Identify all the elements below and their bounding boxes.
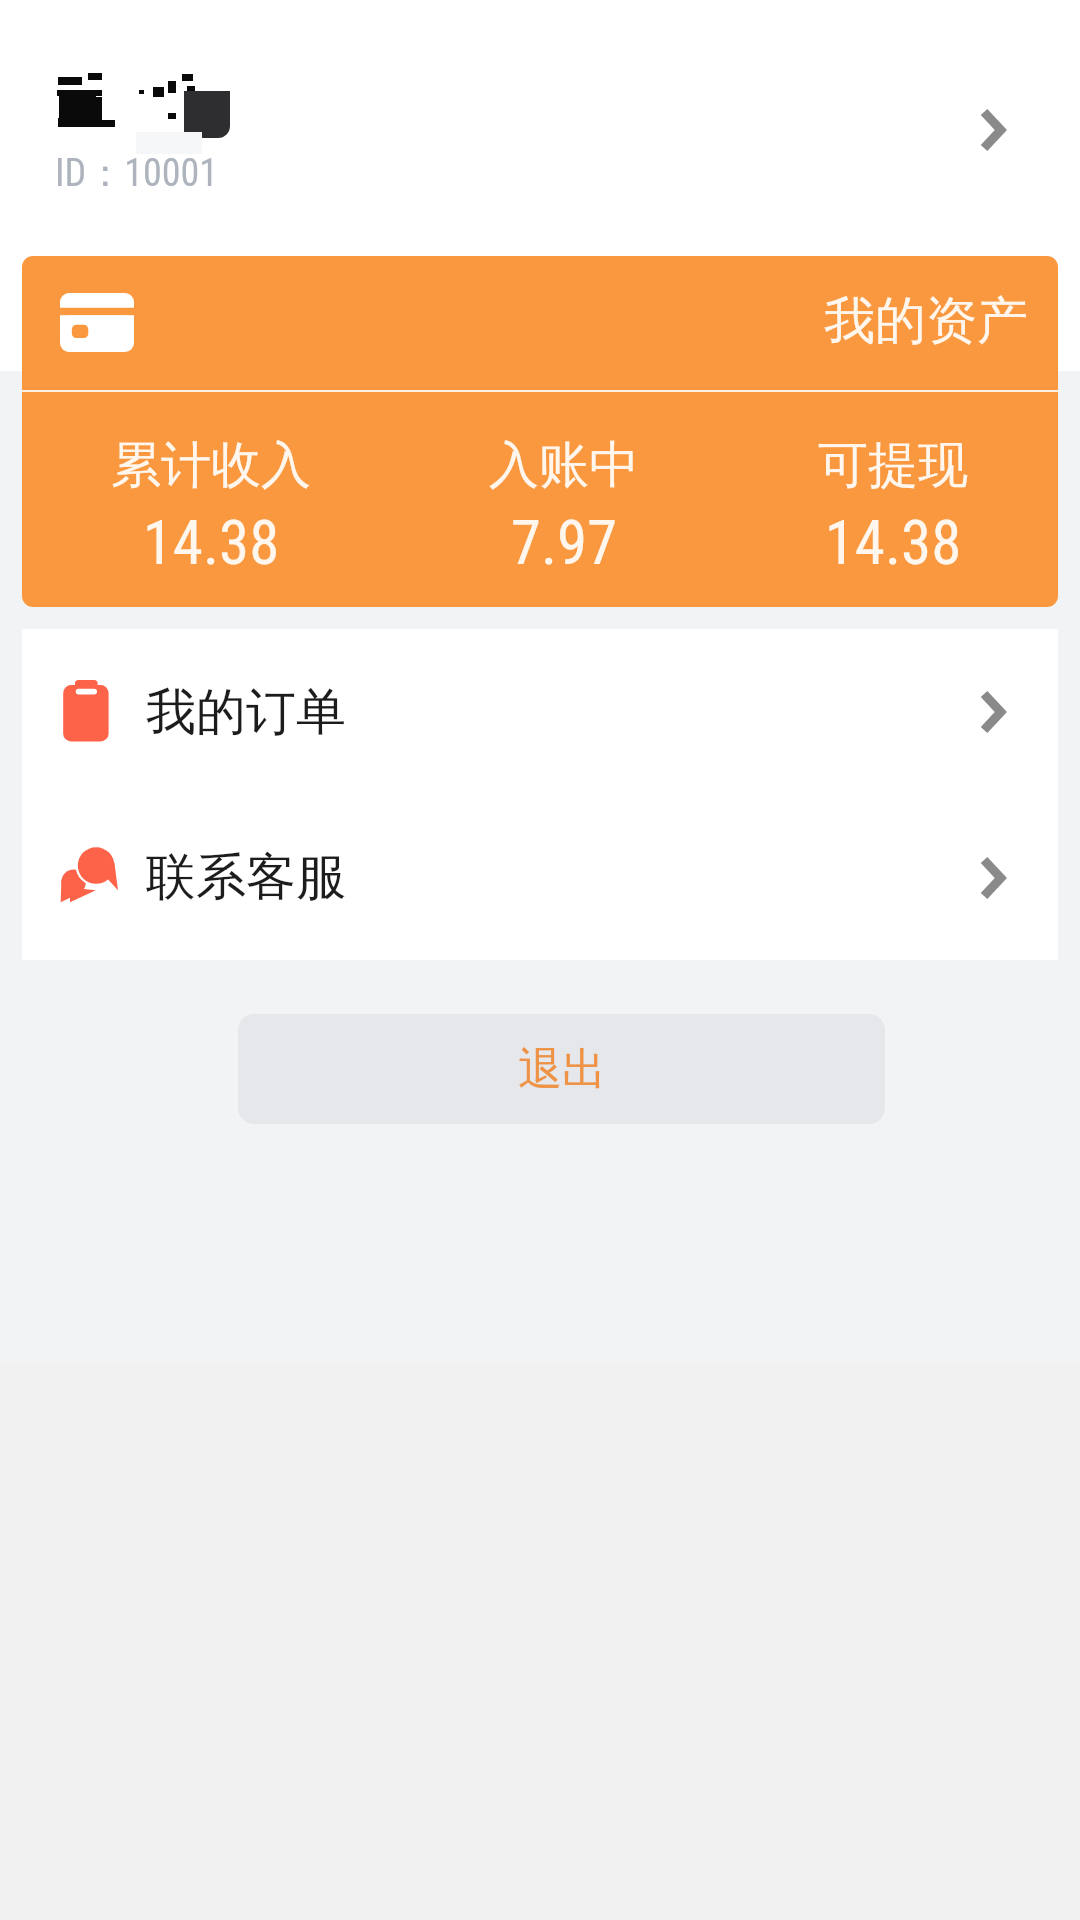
staticText: 14.38	[31, 507, 391, 578]
staticText: 可提现	[713, 434, 1058, 497]
staticText: 14.38	[713, 507, 1058, 578]
button[interactable]: 我的订单	[22, 629, 1058, 795]
button[interactable]: Wallet	[22, 256, 1058, 607]
staticText: 退出	[518, 1042, 606, 1097]
other: Profile details	[980, 108, 1008, 152]
staticText: 入账中	[384, 434, 744, 497]
button[interactable]: 联系客服	[22, 795, 1058, 960]
staticText: ID：10001	[55, 149, 218, 197]
staticText: 我的订单	[146, 681, 346, 744]
button[interactable]: 退出	[238, 1014, 885, 1124]
other: Wallet	[60, 293, 134, 352]
staticText: 我的资产	[788, 289, 1058, 353]
staticText: 联系客服	[146, 846, 346, 909]
staticText: 7.97	[384, 507, 744, 578]
button[interactable]: ID：10001	[0, 0, 1080, 256]
staticText: 累计收入	[31, 434, 391, 497]
